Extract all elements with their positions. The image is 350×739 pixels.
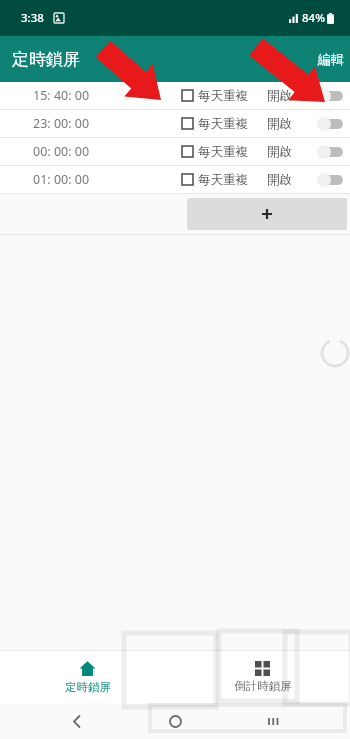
button[interactable]: 定時鎖屏: [0, 650, 175, 703]
staticText: 開啟: [267, 116, 292, 132]
staticText: 3:38: [21, 10, 44, 26]
staticText: 每天重複: [198, 172, 248, 188]
staticText: 定時鎖屏: [12, 49, 80, 70]
staticText: 每天重複: [198, 88, 248, 104]
button[interactable]: Back: [62, 706, 92, 736]
staticText: 23: 00: 00: [33, 115, 90, 132]
button[interactable]: Repeat daily: [179, 115, 196, 132]
staticText: 倒計時鎖屏: [234, 679, 292, 693]
staticText: 15: 40: 00: [33, 87, 90, 104]
button[interactable]: Enable alarm: [311, 168, 349, 192]
staticText: 每天重複: [198, 116, 248, 132]
staticText: 開啟: [267, 172, 292, 188]
button[interactable]: Repeat daily: [179, 171, 196, 188]
button[interactable]: 倒計時鎖屏: [175, 650, 350, 703]
button[interactable]: 00: 00: 00: [0, 138, 350, 165]
staticText: 定時鎖屏: [65, 680, 111, 694]
staticText: 01: 00: 00: [33, 171, 90, 188]
button[interactable]: Recents: [258, 706, 288, 736]
button[interactable]: Home: [160, 706, 190, 736]
button[interactable]: 編輯: [312, 43, 350, 75]
button[interactable]: Add: [187, 198, 347, 230]
staticText: 開啟: [267, 88, 292, 104]
staticText: 開啟: [267, 144, 292, 160]
button[interactable]: Repeat daily: [179, 87, 196, 104]
staticText: 每天重複: [198, 144, 248, 160]
button[interactable]: 23: 00: 00: [0, 110, 350, 137]
staticText: 84%: [302, 10, 325, 26]
button[interactable]: Enable alarm: [311, 84, 349, 108]
staticText: 00: 00: 00: [33, 143, 90, 160]
button[interactable]: 15: 40: 00: [0, 82, 350, 109]
button[interactable]: 01: 00: 00: [0, 166, 350, 193]
button[interactable]: Enable alarm: [311, 140, 349, 164]
button[interactable]: Repeat daily: [179, 143, 196, 160]
button[interactable]: Enable alarm: [311, 112, 349, 136]
staticText: 編輯: [318, 51, 344, 67]
